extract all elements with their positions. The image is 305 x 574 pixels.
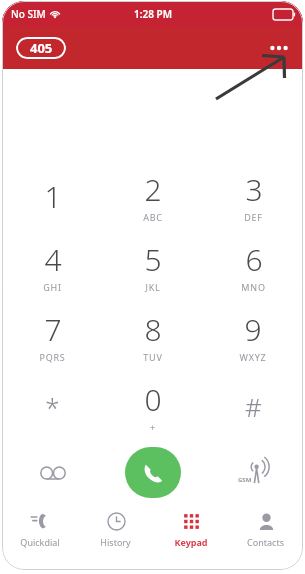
staticText: 2	[144, 169, 162, 210]
button[interactable]: #	[203, 371, 303, 441]
button[interactable]: 4	[2, 231, 103, 301]
staticText: WXYZ	[239, 351, 267, 363]
button[interactable]: *	[2, 371, 103, 441]
staticText: 1	[44, 176, 62, 217]
staticText: GSM	[238, 476, 252, 484]
staticText: 8	[144, 309, 162, 350]
staticText: Contacts	[247, 536, 284, 548]
button[interactable]: 9	[203, 301, 303, 371]
staticText: JKL	[145, 281, 161, 293]
button[interactable]: GSM network	[203, 447, 303, 498]
staticText: 6	[245, 239, 263, 280]
button[interactable]: Call	[125, 447, 181, 498]
staticText: 3	[245, 169, 263, 210]
staticText: 4	[44, 239, 62, 280]
button[interactable]: 0	[103, 371, 203, 441]
staticText: #	[245, 389, 262, 424]
staticText: History	[100, 536, 131, 548]
button[interactable]: 1	[2, 161, 103, 231]
staticText: 9	[244, 309, 262, 350]
staticText: ABC	[143, 211, 163, 223]
staticText: 405	[30, 39, 53, 57]
staticText: *	[45, 389, 60, 424]
button[interactable]: Quickdial	[2, 506, 78, 570]
button[interactable]: 8	[103, 301, 203, 371]
button[interactable]: 6	[203, 231, 303, 301]
staticText: 0	[144, 379, 162, 420]
staticText: DEF	[244, 211, 263, 223]
staticText: Keypad	[174, 536, 208, 548]
button[interactable]: 7	[2, 301, 103, 371]
staticText: 1:28 PM	[134, 7, 172, 21]
button[interactable]: History	[78, 506, 153, 570]
staticText: +	[150, 421, 156, 433]
staticText: 5	[144, 239, 162, 280]
staticText: TUV	[143, 351, 163, 363]
button[interactable]: 405	[16, 37, 66, 59]
staticText: PQRS	[39, 351, 66, 363]
staticText: MNO	[241, 281, 266, 293]
button[interactable]: More options	[261, 30, 297, 66]
button[interactable]: Voicemail	[2, 447, 103, 498]
button[interactable]: Keypad	[153, 506, 228, 570]
button[interactable]: 2	[103, 161, 203, 231]
button[interactable]: 3	[203, 161, 303, 231]
staticText: Quickdial	[20, 536, 60, 548]
button[interactable]: 5	[103, 231, 203, 301]
staticText: No SIM	[11, 7, 46, 21]
button[interactable]: Contacts	[228, 506, 303, 570]
staticText: GHI	[43, 281, 62, 293]
staticText: 7	[44, 309, 62, 350]
